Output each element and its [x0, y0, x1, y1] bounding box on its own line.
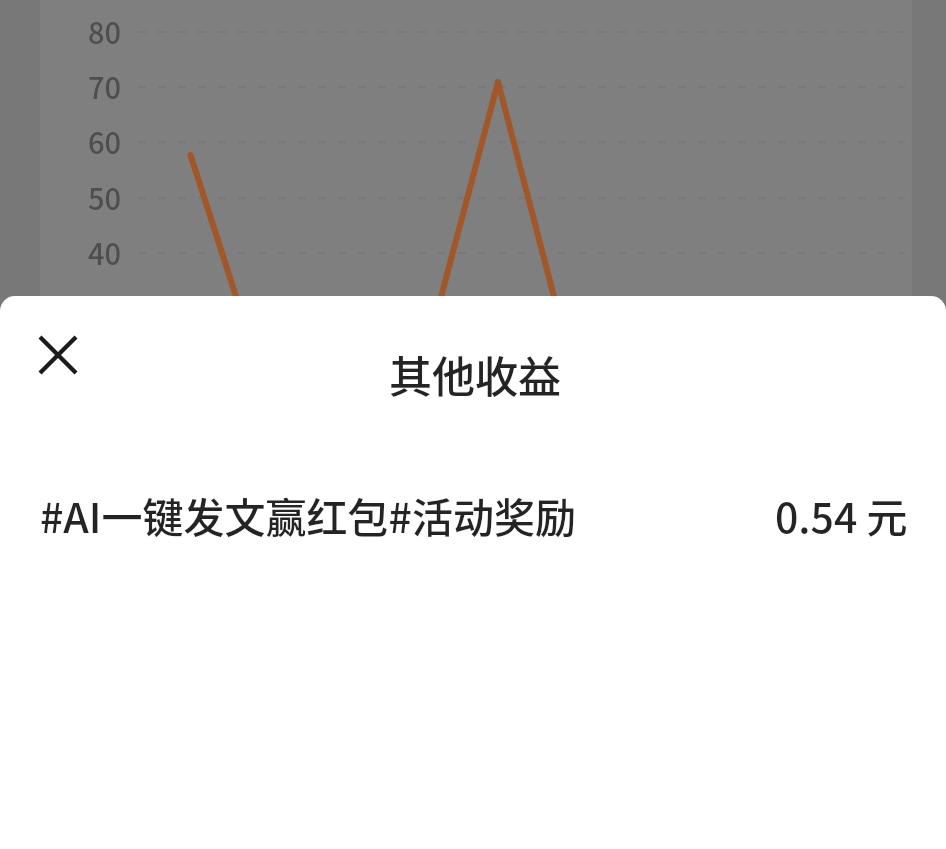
- staticText: 60: [88, 120, 122, 162]
- staticText: #AI一键发文赢红包#活动奖励: [40, 485, 576, 544]
- staticText: 0.54 元: [775, 485, 908, 544]
- button[interactable]: #AI一键发文赢红包#活动奖励: [0, 466, 946, 562]
- staticText: 70: [88, 65, 122, 107]
- button[interactable]: Close: [22, 319, 94, 391]
- staticText: 40: [88, 231, 122, 273]
- staticText: 80: [88, 10, 122, 52]
- staticText: 其他收益: [389, 343, 561, 405]
- staticText: 50: [88, 176, 122, 218]
